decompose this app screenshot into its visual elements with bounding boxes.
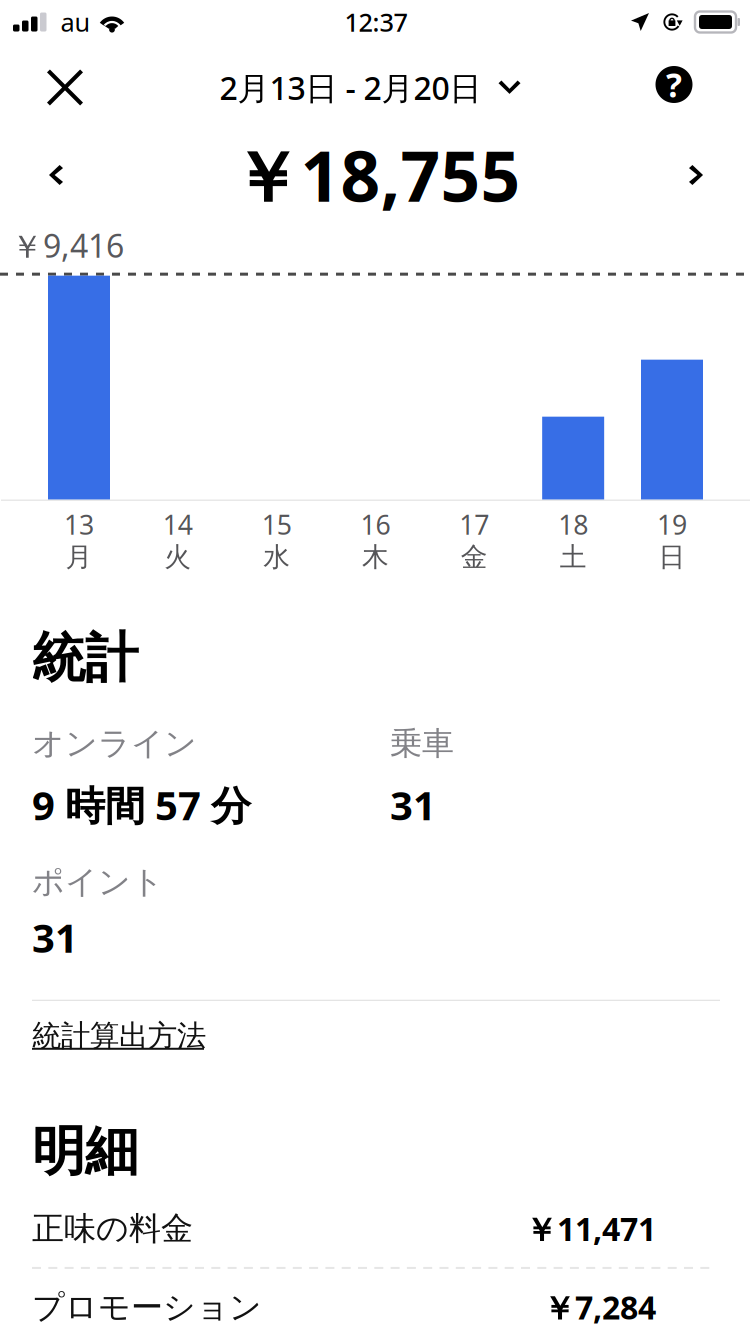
staticText: 9 時間 57 分 [32,778,251,831]
staticText: オンライン [32,724,197,763]
staticText: 木 [362,541,389,573]
staticText: 乗車 [390,724,454,763]
staticText: 31 [390,778,436,831]
staticText: 19 [657,507,687,542]
staticText: 明細 [32,1119,138,1184]
staticText: 31 [32,911,78,964]
staticText: 統計算出方法 [32,1018,206,1054]
staticText: 統計 [32,625,138,691]
staticText: au [60,5,90,39]
button[interactable]: 閉じる [17,44,113,131]
staticText: ￥9,416 [11,224,124,267]
button[interactable]: ヘルプ [626,44,722,131]
staticText: 13 [64,507,94,542]
staticText: 12:37 [344,5,407,39]
staticText: 日 [658,541,685,573]
button[interactable]: 前の週 [1,131,111,219]
button[interactable]: 2月13日 - 2月20日 [219,44,520,131]
staticText: プロモーション [32,1288,262,1327]
staticText: 14 [163,507,193,542]
staticText: 火 [164,541,191,573]
staticText: ? [666,62,682,107]
staticText: 水 [263,541,290,573]
staticText: ポイント [32,862,164,902]
button[interactable]: 統計算出方法 [32,1001,206,1068]
staticText: 16 [360,507,390,542]
staticText: 土 [560,541,587,573]
staticText: 18 [558,507,588,542]
staticText: 15 [262,507,292,542]
staticText: ￥18,755 [231,129,520,221]
staticText: 17 [459,507,489,542]
staticText: ￥7,284 [543,1286,656,1329]
staticText: 正味の料金 [32,1209,193,1248]
staticText: 金 [461,541,488,573]
button[interactable]: 次の週 [641,131,750,219]
staticText: ￥11,471 [525,1207,656,1250]
staticText: 2月13日 - 2月20日 [219,66,481,109]
staticText: 月 [65,541,92,573]
